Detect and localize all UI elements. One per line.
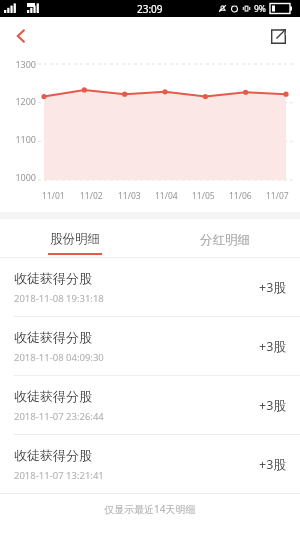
staticText: 收徒获得分股	[14, 270, 92, 286]
staticText: 23:09	[137, 2, 163, 16]
button[interactable]: 收徒获得分股	[0, 317, 300, 375]
staticText: 收徒获得分股	[14, 447, 92, 463]
staticText: 股份明细	[50, 231, 100, 247]
staticText: 2018-11-08 04:09:30	[14, 351, 104, 364]
button[interactable]: 分红明细	[150, 219, 300, 257]
staticText: 11/01	[42, 190, 65, 202]
staticText: 11/06	[229, 190, 252, 202]
staticText: 11/03	[118, 190, 141, 202]
staticText: 2018-11-07 13:21:41	[14, 469, 104, 482]
button[interactable]: 收徒获得分股	[0, 258, 300, 316]
staticText: 11/05	[192, 190, 215, 202]
staticText: 11/02	[80, 190, 103, 202]
staticText: 1000	[6, 171, 36, 183]
staticText: 11/07	[266, 190, 289, 202]
staticText: +3股	[259, 279, 286, 296]
button[interactable]: 收徒获得分股	[0, 435, 300, 493]
staticText: 1100	[6, 133, 36, 145]
button[interactable]: Share	[256, 17, 300, 55]
staticText: 分红明细	[200, 232, 250, 248]
staticText: 2018-11-07 23:26:44	[14, 410, 104, 423]
staticText: 11/04	[155, 190, 178, 202]
staticText: +3股	[259, 397, 286, 414]
staticText: 仅显示最近14天明细	[104, 502, 196, 516]
staticText: +3股	[259, 456, 286, 473]
button[interactable]: 收徒获得分股	[0, 376, 300, 434]
staticText: 收徒获得分股	[14, 329, 92, 345]
staticText: 1200	[6, 95, 36, 107]
button[interactable]: 股份明细	[0, 219, 150, 257]
staticText: 1300	[6, 58, 36, 70]
button[interactable]: Back	[0, 17, 42, 55]
staticText: 收徒获得分股	[14, 388, 92, 404]
staticText: 9%	[254, 3, 266, 15]
staticText: 2018-11-08 19:31:18	[14, 292, 104, 305]
staticText: +3股	[259, 338, 286, 355]
